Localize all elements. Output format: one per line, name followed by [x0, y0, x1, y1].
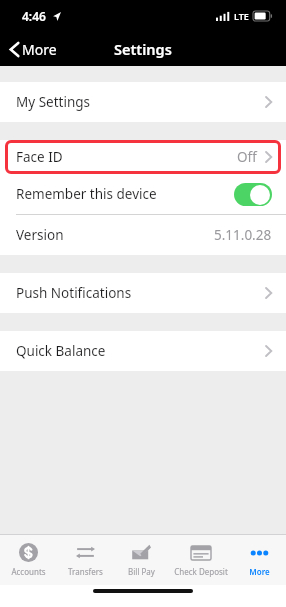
staticText: Quick Balance — [16, 342, 106, 360]
staticText: Remember this device — [16, 185, 157, 203]
button[interactable]: Remember this device toggle, on — [234, 183, 272, 206]
staticText: Accounts — [11, 566, 46, 577]
staticText: Face ID — [16, 148, 63, 166]
staticText: 5.11.0.28 — [214, 226, 272, 244]
staticText: Settings — [114, 39, 172, 59]
button[interactable]: Transfers — [57, 535, 113, 585]
button[interactable]: Check Deposit — [169, 535, 233, 585]
staticText: My Settings — [16, 93, 91, 111]
staticText: Bill Pay — [128, 566, 155, 577]
button[interactable]: More — [0, 36, 67, 63]
button[interactable]: More — [233, 535, 286, 585]
staticText: Push Notifications — [16, 284, 132, 302]
button[interactable]: Face ID — [5, 140, 281, 174]
button[interactable]: Accounts — [0, 535, 57, 585]
button[interactable]: My Settings — [0, 82, 286, 122]
staticText: More — [22, 40, 57, 59]
staticText: Check Deposit — [174, 566, 228, 577]
staticText: LTE — [234, 10, 249, 22]
button[interactable]: Push Notifications — [0, 273, 286, 313]
staticText: Version — [16, 226, 64, 244]
staticText: Transfers — [68, 566, 103, 577]
staticText: 4:46 — [22, 8, 46, 24]
button[interactable]: Version — [0, 215, 286, 255]
staticText: More — [249, 566, 270, 577]
button[interactable]: Quick Balance — [0, 331, 286, 371]
button[interactable]: Bill Pay — [113, 535, 169, 585]
staticText: Off — [237, 148, 257, 166]
